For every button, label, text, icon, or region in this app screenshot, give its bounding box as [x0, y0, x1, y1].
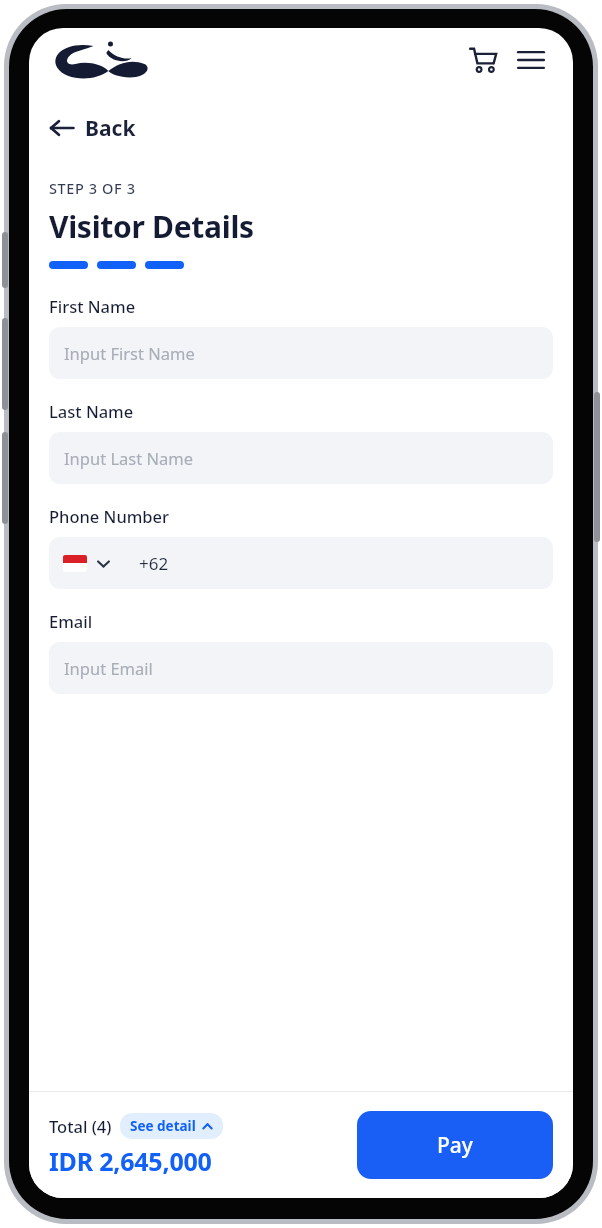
button[interactable]: +62	[49, 537, 553, 589]
staticText: Input Last Name	[64, 447, 193, 469]
staticText: Back	[85, 114, 136, 143]
staticText: Input First Name	[64, 342, 195, 364]
button[interactable]: Logo	[49, 35, 155, 85]
staticText: Visitor Details	[49, 206, 254, 247]
button[interactable]: Menu	[509, 38, 553, 82]
staticText: Total (4)	[49, 1115, 112, 1137]
button[interactable]: See detail	[120, 1113, 223, 1139]
button[interactable]: Back	[49, 106, 136, 150]
staticText: Last Name	[49, 400, 134, 422]
button[interactable]: Cart	[461, 38, 505, 82]
button[interactable]: Input First Name	[49, 327, 553, 379]
staticText: IDR 2,645,000	[49, 1144, 212, 1178]
staticText: See detail	[130, 1117, 196, 1135]
staticText: Pay	[437, 1131, 473, 1160]
staticText: STEP 3 OF 3	[49, 178, 136, 198]
staticText: +62	[139, 552, 169, 575]
staticText: First Name	[49, 295, 136, 317]
staticText: Phone Number	[49, 505, 170, 527]
staticText: Email	[49, 610, 93, 632]
button[interactable]: Input Email	[49, 642, 553, 694]
button[interactable]: Pay	[357, 1111, 553, 1179]
button[interactable]: Input Last Name	[49, 432, 553, 484]
staticText: Input Email	[64, 657, 153, 679]
